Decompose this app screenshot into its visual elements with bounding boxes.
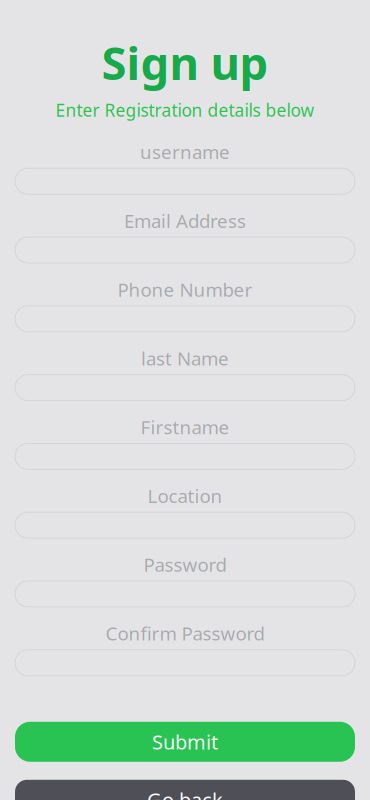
button[interactable]: Submit	[15, 722, 355, 762]
button[interactable]: Go back	[15, 780, 355, 800]
staticText: Enter Registration details below	[55, 98, 314, 121]
staticText: Go back	[147, 786, 223, 800]
staticText: Sign up	[101, 32, 268, 92]
staticText: Location	[147, 483, 222, 508]
staticText: username	[140, 139, 230, 164]
staticText: Email Address	[124, 208, 246, 233]
staticText: Password	[143, 552, 226, 577]
staticText: Confirm Password	[105, 621, 264, 646]
staticText: last Name	[141, 346, 229, 371]
staticText: Firstname	[140, 415, 229, 439]
staticText: Submit	[152, 728, 218, 755]
staticText: Phone Number	[117, 277, 252, 302]
